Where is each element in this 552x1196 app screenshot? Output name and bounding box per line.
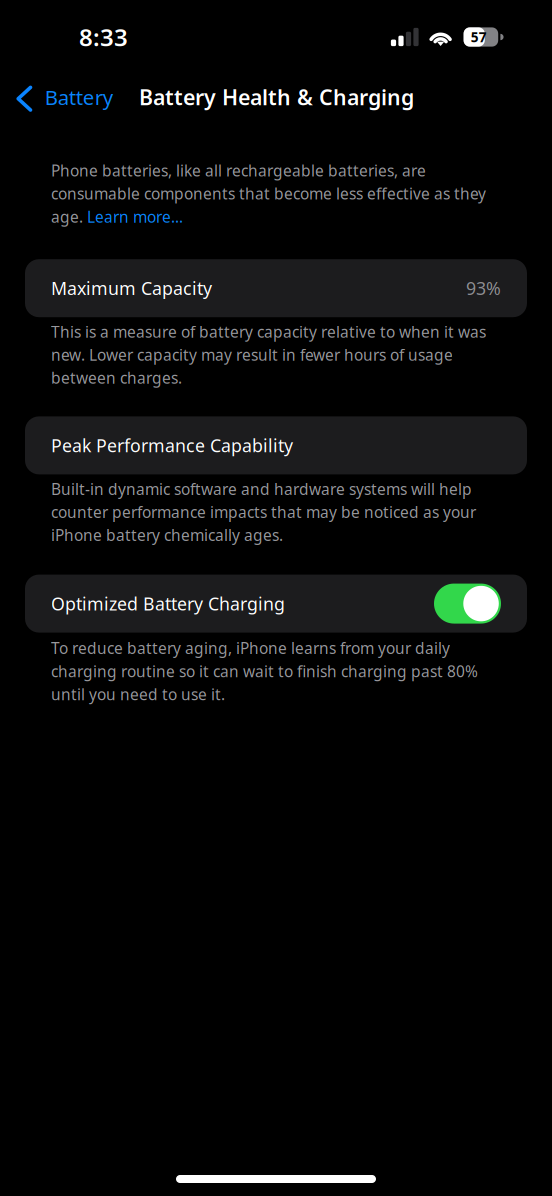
staticText: Peak Performance Capability bbox=[51, 433, 293, 457]
staticText: Phone batteries, like all rechargeable b… bbox=[51, 160, 486, 227]
staticText: To reduce battery aging, iPhone learns f… bbox=[51, 638, 478, 705]
button[interactable]: Battery bbox=[0, 74, 123, 120]
staticText: This is a measure of battery capacity re… bbox=[51, 321, 486, 388]
staticText: Maximum Capacity bbox=[51, 276, 212, 300]
staticText: 93% bbox=[466, 276, 501, 300]
staticText: Optimized Battery Charging bbox=[51, 591, 285, 616]
button[interactable]: Maximum Capacity bbox=[25, 259, 527, 317]
staticText: Battery Health & Charging bbox=[139, 82, 414, 112]
staticText: Battery bbox=[45, 83, 113, 111]
button[interactable]: Peak Performance Capability bbox=[25, 416, 527, 474]
button[interactable]: Optimized Battery Charging bbox=[25, 575, 527, 633]
staticText: 8:33 bbox=[79, 21, 128, 53]
staticText: Built-in dynamic software and hardware s… bbox=[51, 478, 476, 546]
staticText: 57 bbox=[471, 28, 487, 46]
